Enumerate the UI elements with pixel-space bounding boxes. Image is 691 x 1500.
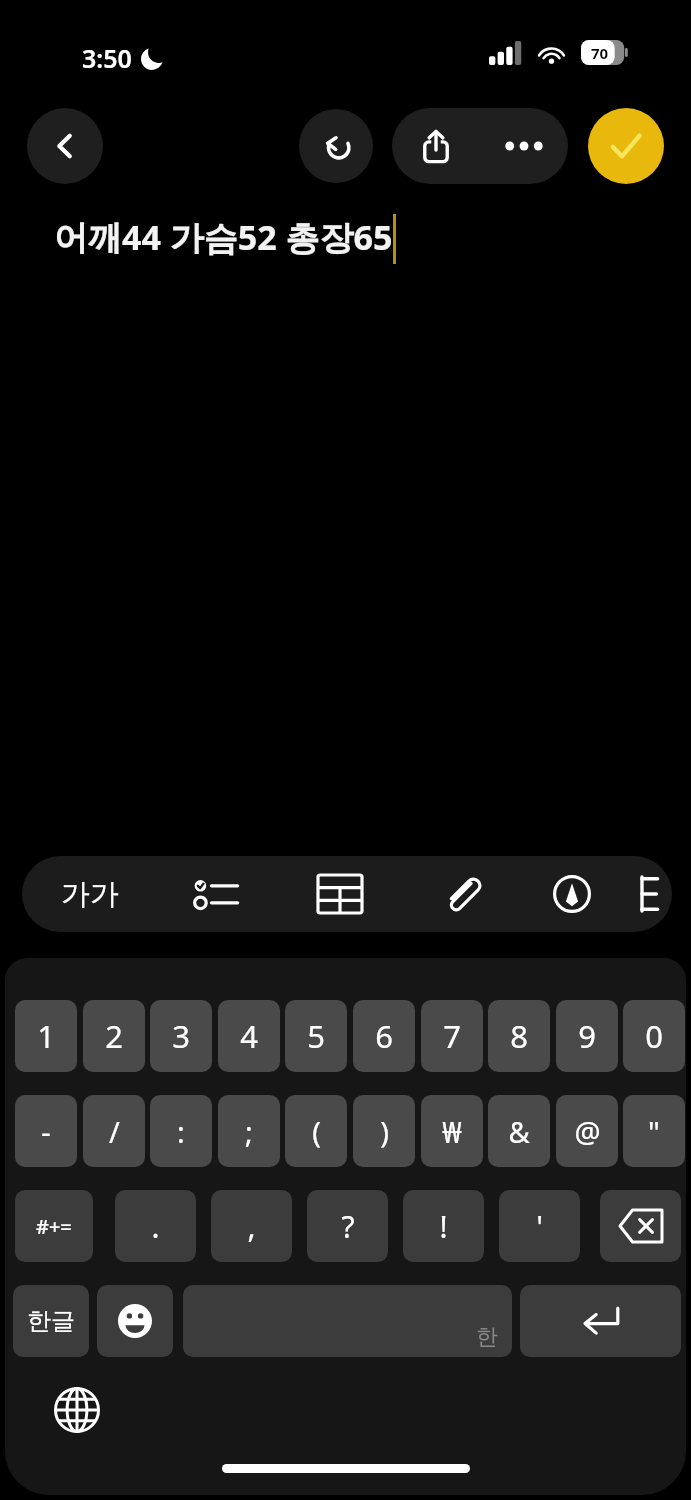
button[interactable]: ) <box>353 1095 415 1167</box>
staticText: 0 <box>645 1015 663 1057</box>
button[interactable]: ( <box>285 1095 347 1167</box>
button[interactable]: More options <box>480 108 568 184</box>
staticText: / <box>109 1112 120 1151</box>
staticText: ; <box>245 1112 253 1151</box>
staticText: ' <box>536 1206 543 1247</box>
button[interactable]: Back <box>27 108 103 184</box>
button[interactable]: Return <box>520 1285 681 1357</box>
staticText: & <box>508 1112 530 1151</box>
button[interactable]: 8 <box>488 1000 550 1072</box>
button[interactable]: 9 <box>556 1000 618 1072</box>
button[interactable]: Table <box>295 856 385 932</box>
staticText: 7 <box>443 1015 461 1057</box>
button[interactable]: / <box>83 1095 145 1167</box>
button[interactable]: 6 <box>353 1000 415 1072</box>
button[interactable]: Done <box>588 108 664 184</box>
button[interactable]: ₩ <box>421 1095 483 1167</box>
button[interactable]: #+= <box>15 1190 93 1262</box>
button[interactable]: 어깨44 가슴52 총장65 <box>54 212 396 262</box>
staticText: 6 <box>375 1015 393 1057</box>
button[interactable]: 5 <box>285 1000 347 1072</box>
staticText: 8 <box>510 1015 528 1057</box>
staticText: ! <box>439 1206 448 1247</box>
button[interactable]: More formatting <box>636 856 672 932</box>
staticText: 어깨44 가슴52 총장65 <box>54 214 393 260</box>
staticText: #+= <box>36 1213 72 1240</box>
staticText: , <box>247 1206 256 1247</box>
button[interactable]: Emoji <box>97 1285 173 1357</box>
staticText: 3 <box>172 1015 190 1057</box>
button[interactable]: 2 <box>83 1000 145 1072</box>
staticText: 3:50 <box>82 41 132 75</box>
button[interactable]: 가가 <box>40 856 140 932</box>
button[interactable]: - <box>15 1095 77 1167</box>
staticText: . <box>151 1206 160 1247</box>
button[interactable]: ' <box>499 1190 580 1262</box>
staticText: " <box>648 1112 660 1151</box>
staticText: ) <box>380 1112 389 1151</box>
button[interactable]: , <box>211 1190 292 1262</box>
staticText: 2 <box>105 1015 123 1057</box>
button[interactable]: Backspace <box>600 1190 681 1262</box>
button[interactable]: Checklist <box>172 856 262 932</box>
staticText: 4 <box>240 1015 258 1057</box>
staticText: 가가 <box>61 876 119 913</box>
staticText: 1 <box>37 1015 55 1057</box>
button[interactable]: ; <box>218 1095 280 1167</box>
button[interactable]: Share <box>392 108 480 184</box>
staticText: - <box>41 1112 51 1151</box>
button[interactable]: ? <box>307 1190 388 1262</box>
button[interactable]: 4 <box>218 1000 280 1072</box>
button[interactable]: @ <box>556 1095 618 1167</box>
staticText: : <box>177 1112 185 1151</box>
staticText: 9 <box>578 1015 596 1057</box>
button[interactable]: Space <box>183 1285 512 1357</box>
staticText: ₩ <box>442 1112 462 1151</box>
button[interactable]: & <box>488 1095 550 1167</box>
button[interactable]: Undo <box>299 109 373 183</box>
staticText: @ <box>574 1112 601 1151</box>
staticText: ( <box>312 1112 321 1151</box>
button[interactable]: . <box>115 1190 196 1262</box>
button[interactable]: 3 <box>150 1000 212 1072</box>
staticText: 70 <box>591 43 609 63</box>
button[interactable]: Change keyboard <box>45 1378 109 1442</box>
staticText: 한 <box>476 1323 498 1351</box>
button[interactable]: 7 <box>421 1000 483 1072</box>
button[interactable]: 1 <box>15 1000 77 1072</box>
staticText: ? <box>341 1206 355 1247</box>
staticText: 5 <box>307 1015 325 1057</box>
button[interactable]: : <box>150 1095 212 1167</box>
button[interactable]: " <box>623 1095 685 1167</box>
button[interactable]: 0 <box>623 1000 685 1072</box>
button[interactable]: Attach <box>417 856 507 932</box>
button[interactable]: Draw <box>527 856 617 932</box>
staticText: 한글 <box>27 1306 75 1336</box>
button[interactable]: ! <box>403 1190 484 1262</box>
button[interactable]: 한글 <box>13 1285 89 1357</box>
